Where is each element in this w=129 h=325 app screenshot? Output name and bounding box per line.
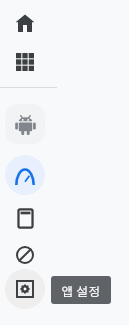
button[interactable]: All apps <box>8 45 42 79</box>
button[interactable]: Blocked <box>5 235 45 275</box>
staticText: 앱 설정 <box>61 282 101 298</box>
button[interactable]: Performance <box>5 155 45 195</box>
button[interactable]: Device <box>5 198 45 238</box>
button[interactable]: Android device <box>5 104 45 144</box>
button[interactable]: Home <box>8 6 42 40</box>
button[interactable]: App settings <box>5 269 45 309</box>
